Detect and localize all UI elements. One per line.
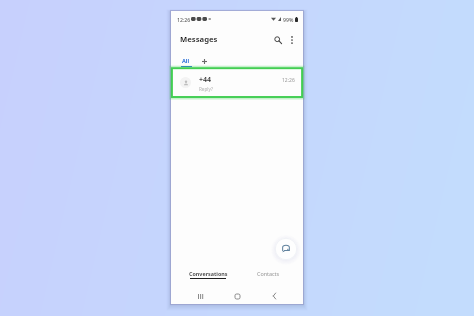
button[interactable]: Conversations <box>178 263 238 285</box>
button[interactable]: Contacts <box>246 263 290 285</box>
staticText: Conversations <box>189 270 228 277</box>
staticText: Contacts <box>257 270 280 277</box>
button[interactable]: Home <box>229 288 245 304</box>
button[interactable]: More options <box>285 33 298 46</box>
button[interactable]: Add tab <box>199 56 209 66</box>
staticText: All <box>182 57 190 65</box>
button[interactable]: +44 <box>171 68 303 96</box>
button[interactable]: Back <box>266 288 282 304</box>
staticText: Reply? <box>199 86 213 92</box>
staticText: Messages <box>180 34 218 44</box>
staticText: 12:26 <box>282 77 295 84</box>
button[interactable]: Search <box>271 33 284 46</box>
staticText: 12:26 <box>177 16 191 23</box>
button[interactable]: Start new conversation <box>272 235 300 263</box>
staticText: +44 <box>199 75 212 85</box>
staticText: 99% <box>283 16 294 23</box>
button[interactable]: All <box>178 57 194 67</box>
button[interactable]: Recent apps <box>192 288 208 304</box>
